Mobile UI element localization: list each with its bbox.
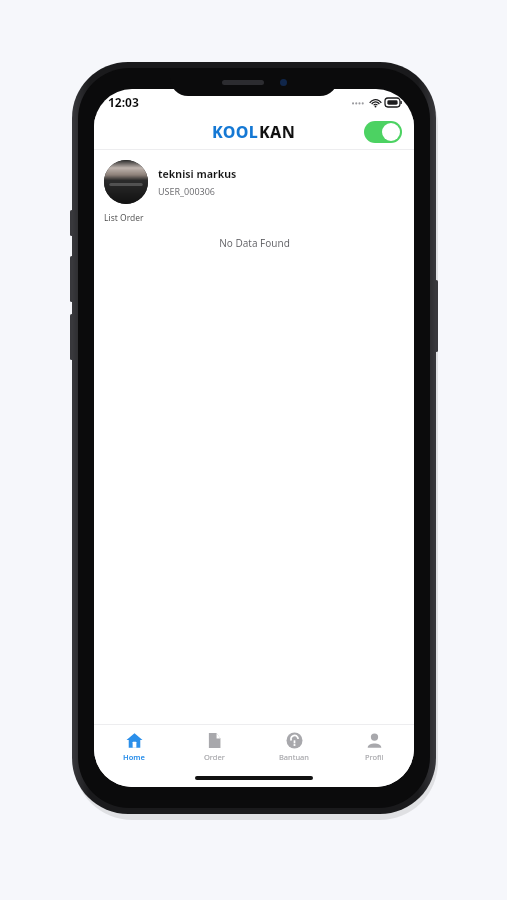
staticText: List Order	[104, 212, 144, 224]
staticText: 12:03	[108, 94, 139, 110]
staticText: No Data Found	[219, 236, 290, 250]
staticText: KOOL	[212, 121, 259, 143]
staticText: Bantuan	[279, 752, 309, 762]
button[interactable]: teknisi markus	[104, 160, 404, 204]
button[interactable]: Profil	[334, 725, 414, 769]
staticText: USER_000306	[158, 185, 216, 197]
button[interactable]: Home	[94, 725, 174, 769]
staticText: KAN	[259, 121, 296, 143]
staticText: Order	[204, 752, 225, 762]
button[interactable]: Toggle availability	[364, 121, 402, 143]
button[interactable]: Bantuan	[254, 725, 334, 769]
staticText: Home	[123, 752, 145, 762]
button[interactable]: Order	[174, 725, 254, 769]
staticText: Profil	[365, 752, 384, 762]
staticText: teknisi markus	[158, 167, 237, 181]
